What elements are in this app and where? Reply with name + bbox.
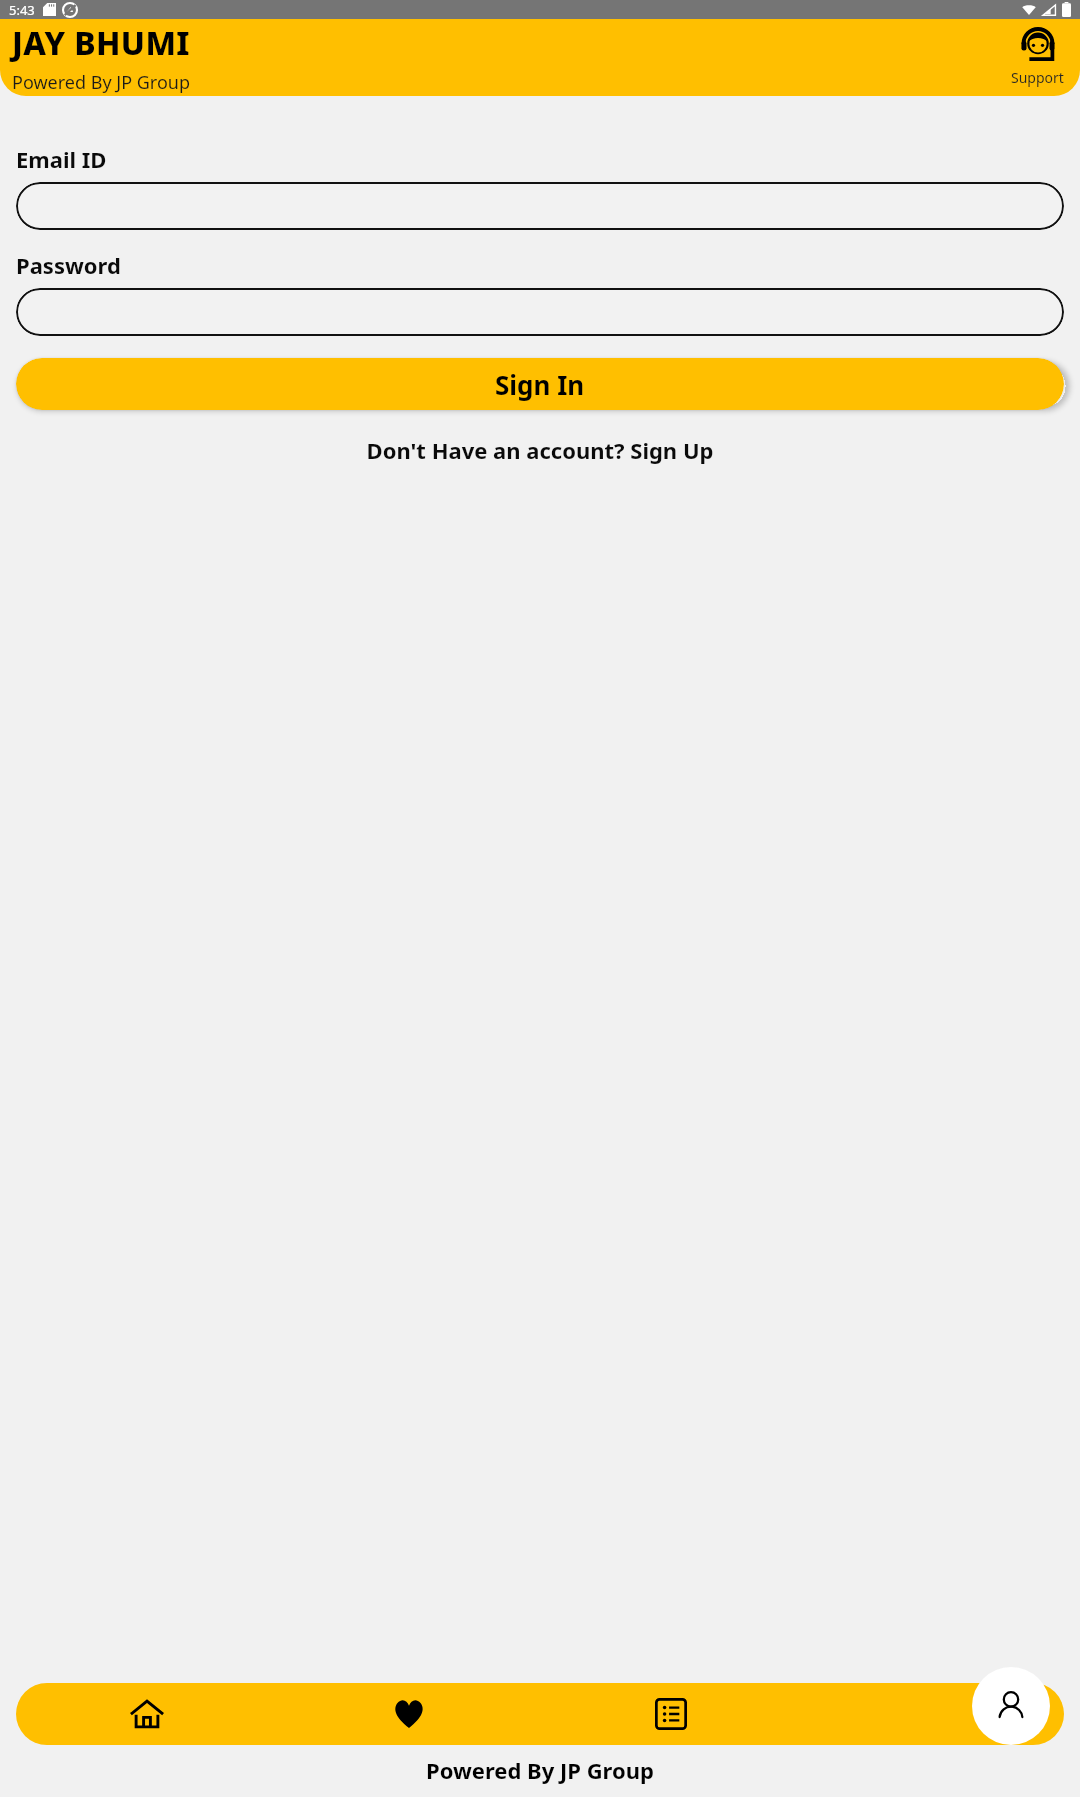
staticText: Email ID — [16, 144, 107, 174]
staticText: JAY BHUMI — [12, 21, 190, 65]
staticText: Powered By JP Group — [12, 70, 191, 95]
button[interactable]: Don't Have an account? Sign Up — [16, 435, 1064, 465]
button[interactable]: Orders — [540, 1683, 802, 1745]
staticText: Support — [1011, 68, 1064, 87]
button[interactable]: Profile — [972, 1667, 1050, 1745]
staticText: Password — [16, 250, 121, 280]
button[interactable]: Support — [1007, 25, 1068, 91]
button[interactable]: Sign In — [16, 358, 1064, 410]
staticText: Powered By JP Group — [426, 1755, 654, 1785]
staticText: 5:43 — [9, 1, 35, 19]
button[interactable]: Favourites — [278, 1683, 540, 1745]
staticText: Sign In — [495, 367, 585, 402]
button[interactable] — [16, 288, 1064, 336]
button[interactable] — [16, 182, 1064, 230]
button[interactable]: Home — [16, 1683, 278, 1745]
